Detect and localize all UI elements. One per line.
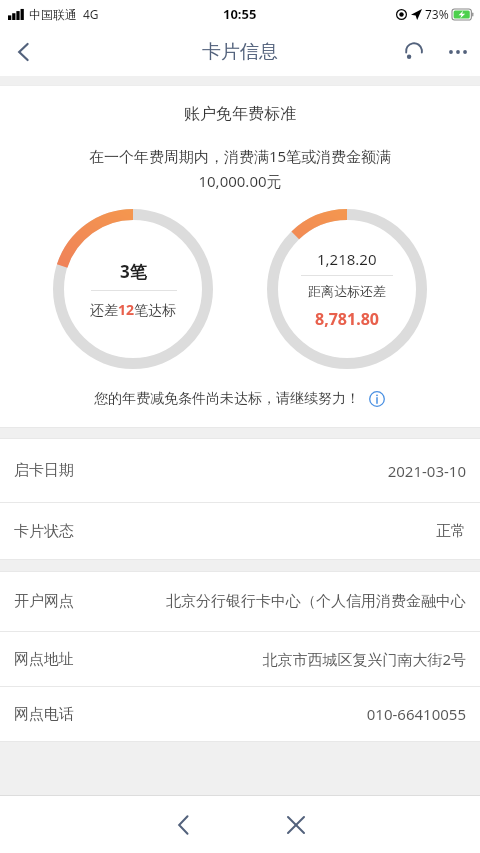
staticText: 4G <box>83 6 99 22</box>
button[interactable]: More options <box>436 30 480 74</box>
staticText: 北京分行银行卡中心（个人信用消费金融中心 <box>166 592 466 611</box>
staticText: 账户免年费标准 <box>0 104 480 124</box>
staticText: 中国联通 <box>29 7 77 22</box>
staticText: 正常 <box>436 522 466 541</box>
button[interactable]: Back <box>0 28 48 76</box>
staticText: 在一个年费周期内，消费满15笔或消费金额满 10,000.00元 <box>20 146 460 191</box>
button[interactable]: 开户网点 <box>0 572 480 631</box>
button[interactable]: Customer service <box>392 30 436 74</box>
button[interactable]: Info <box>367 389 387 409</box>
staticText: 距离达标还差 <box>308 283 386 299</box>
staticText: 开户网点 <box>14 592 74 611</box>
staticText: 卡片状态 <box>14 522 74 541</box>
staticText: 1,218.20 <box>317 249 377 269</box>
staticText: 010-66410055 <box>366 704 466 724</box>
staticText: 网点电话 <box>14 705 74 724</box>
button[interactable]: 网点电话 <box>0 687 480 741</box>
staticText: 网点地址 <box>14 650 74 669</box>
staticText: 卡片信息 <box>202 40 278 64</box>
staticText: 2021-03-10 <box>387 461 466 481</box>
staticText: 73% <box>425 6 449 22</box>
button[interactable]: Close <box>268 797 324 853</box>
staticText: 8,781.80 <box>315 308 379 330</box>
button[interactable]: Back <box>156 797 212 853</box>
staticText: 启卡日期 <box>14 461 74 480</box>
button[interactable]: 卡片状态 <box>0 503 480 559</box>
staticText: 还差12笔达标 <box>90 300 177 319</box>
staticText: 10:55 <box>223 5 257 23</box>
staticText: 3笔 <box>120 260 147 283</box>
staticText: 北京市西城区复兴门南大街2号 <box>262 649 466 669</box>
button[interactable]: 启卡日期 <box>0 439 480 502</box>
button[interactable]: 网点地址 <box>0 632 480 686</box>
staticText: 您的年费减免条件尚未达标，请继续努力！ <box>94 390 360 408</box>
